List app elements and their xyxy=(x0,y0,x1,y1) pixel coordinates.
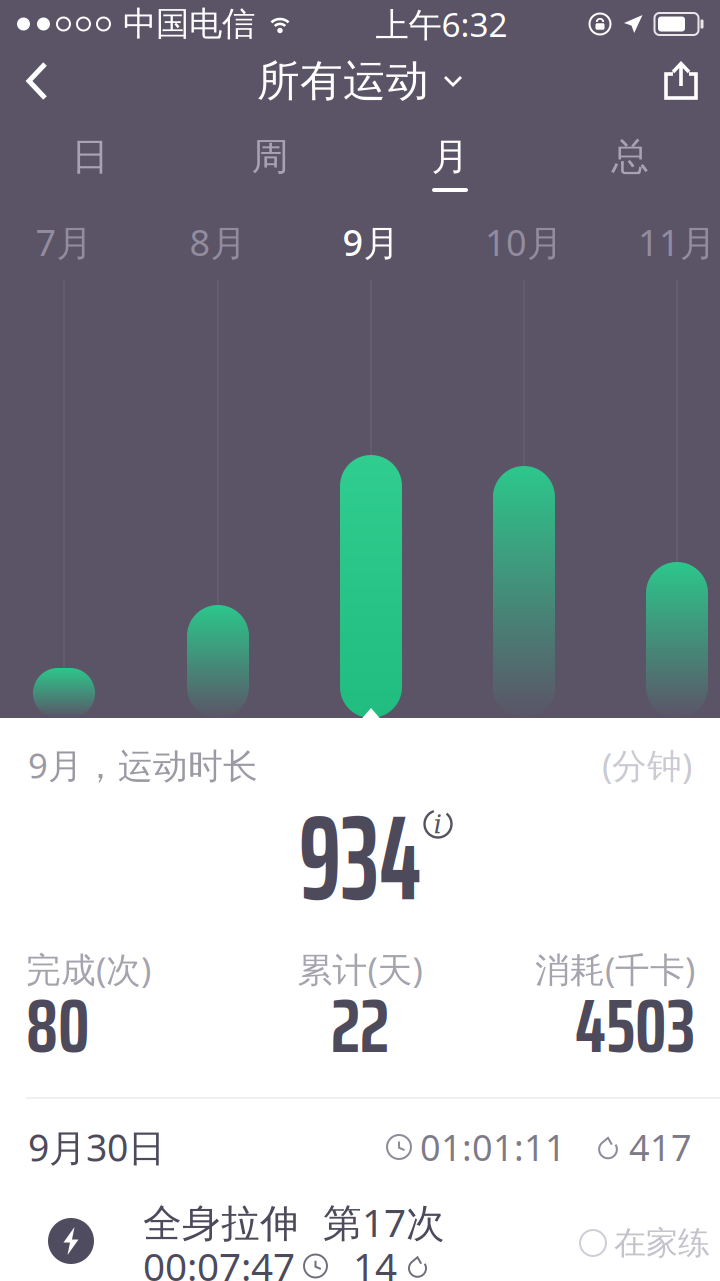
button[interactable]: 日 xyxy=(0,114,180,200)
staticText: 01:01:11 xyxy=(420,1123,566,1171)
button[interactable]: 分享 xyxy=(640,50,720,112)
staticText: i xyxy=(433,808,442,839)
staticText: 日 xyxy=(71,134,108,180)
staticText: 消耗(千卡) xyxy=(535,946,695,992)
staticText: 7月 xyxy=(35,218,92,266)
button[interactable]: 全身拉伸 第17次 xyxy=(0,718,720,1281)
staticText: 11月 xyxy=(638,218,716,266)
staticText: 417 xyxy=(629,1123,692,1171)
button[interactable]: 所有运动 xyxy=(241,45,479,117)
staticText: 在家练 xyxy=(614,1223,710,1263)
staticText: 4503 xyxy=(575,967,695,1085)
staticText: 934 xyxy=(288,765,431,951)
staticText: 总 xyxy=(611,134,648,180)
staticText: (分钟) xyxy=(602,742,692,788)
button[interactable]: 月 xyxy=(360,114,540,200)
button[interactable]: 返回 xyxy=(0,50,76,112)
staticText: 全身拉伸 第17次 xyxy=(143,1196,445,1248)
staticText: 9月 xyxy=(342,218,399,266)
staticText: 完成(次) xyxy=(26,946,151,992)
staticText: 周 xyxy=(251,134,288,180)
staticText: 80 xyxy=(26,967,90,1085)
staticText: 所有运动 xyxy=(257,55,429,107)
staticText: 累计(天) xyxy=(297,946,422,992)
button[interactable]: 总 xyxy=(540,114,720,200)
staticText: 9月，运动时长 xyxy=(28,742,258,788)
button[interactable]: 周 xyxy=(180,114,360,200)
staticText: 10月 xyxy=(485,218,563,266)
staticText: 中国电信 xyxy=(123,3,255,44)
staticText: 00:07:47 xyxy=(143,1240,295,1281)
staticText: 14 xyxy=(353,1240,397,1281)
staticText: 月 xyxy=(431,134,468,180)
staticText: 9月30日 xyxy=(28,1122,165,1172)
staticText: 上午6:32 xyxy=(375,2,507,46)
staticText: 22 xyxy=(331,967,389,1085)
staticText: 8月 xyxy=(189,218,246,266)
